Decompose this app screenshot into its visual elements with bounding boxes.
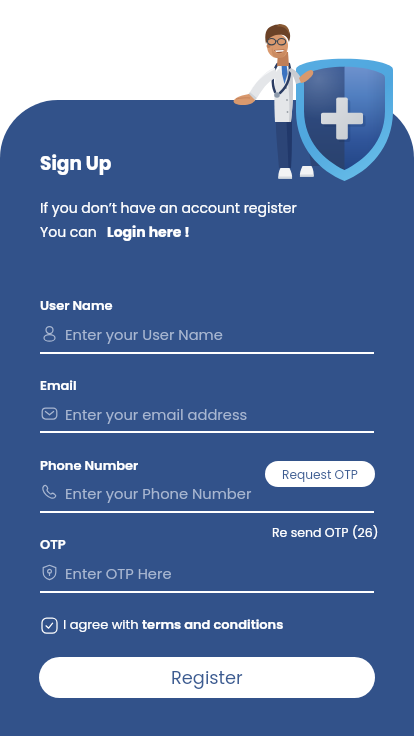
staticText: Sign Up: [40, 151, 112, 177]
staticText: You can: [40, 222, 97, 242]
staticText: Register: [171, 665, 243, 690]
staticText: Login here !: [107, 222, 190, 242]
staticText: If you don’t have an account register: [40, 198, 297, 218]
staticText: Enter OTP Here: [65, 564, 172, 585]
staticText: Enter your Phone Number: [65, 484, 252, 505]
staticText: User Name: [40, 296, 113, 314]
staticText: Enter your email address: [65, 405, 248, 426]
button[interactable]: Register: [39, 657, 375, 698]
staticText: I agree with terms and conditions: [63, 615, 284, 633]
staticText: Email: [40, 376, 77, 394]
button[interactable]: I agree with terms and conditions: [40, 615, 284, 633]
staticText: Phone Number: [40, 456, 139, 474]
staticText: Enter your User Name: [65, 325, 223, 346]
button[interactable]: Request OTP: [265, 461, 375, 487]
staticText: Re send OTP (26): [272, 524, 379, 541]
button[interactable]: Login here !: [107, 222, 190, 242]
staticText: OTP: [40, 535, 66, 553]
staticText: Request OTP: [282, 466, 358, 483]
